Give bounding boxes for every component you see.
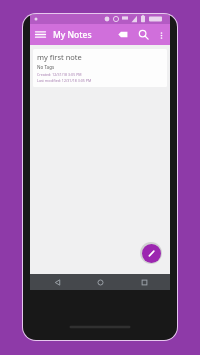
button[interactable]: New note (142, 244, 161, 263)
staticText: Created: 12/31/18 3:05 PM (37, 72, 82, 77)
staticText: my first note (37, 52, 82, 62)
button[interactable]: Home (83, 274, 117, 290)
staticText: No Tags (37, 64, 55, 70)
staticText: Last modified: 12/31/18 3:05 PM (37, 78, 92, 83)
button[interactable]: More options (154, 28, 168, 42)
button[interactable]: Open navigation drawer (30, 24, 51, 45)
button[interactable]: Recent apps (127, 274, 161, 290)
button[interactable]: Search (133, 24, 154, 45)
staticText: My Notes (53, 29, 92, 41)
button[interactable]: my first note (33, 49, 167, 87)
button[interactable]: Back (40, 274, 74, 290)
button[interactable]: Tags (112, 24, 133, 45)
